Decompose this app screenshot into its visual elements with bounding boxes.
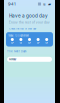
staticText: Have a good day	[9, 13, 48, 19]
staticText: 9:41	[8, 2, 16, 6]
staticText: Today, 12 September	[8, 34, 29, 37]
staticText: 12°	[37, 42, 40, 45]
staticText: 12°	[45, 42, 48, 45]
staticText: The Next Days	[7, 50, 26, 53]
staticText: Check the rest of your day	[9, 27, 36, 30]
staticText: 12°	[19, 42, 22, 45]
staticText: Enjoy the rest of your day	[9, 21, 50, 24]
staticText: ıll ≈ ▰	[38, 2, 51, 6]
staticText: 12°	[28, 42, 31, 45]
staticText: 12°	[11, 42, 14, 45]
staticText: Monday	[9, 58, 16, 61]
